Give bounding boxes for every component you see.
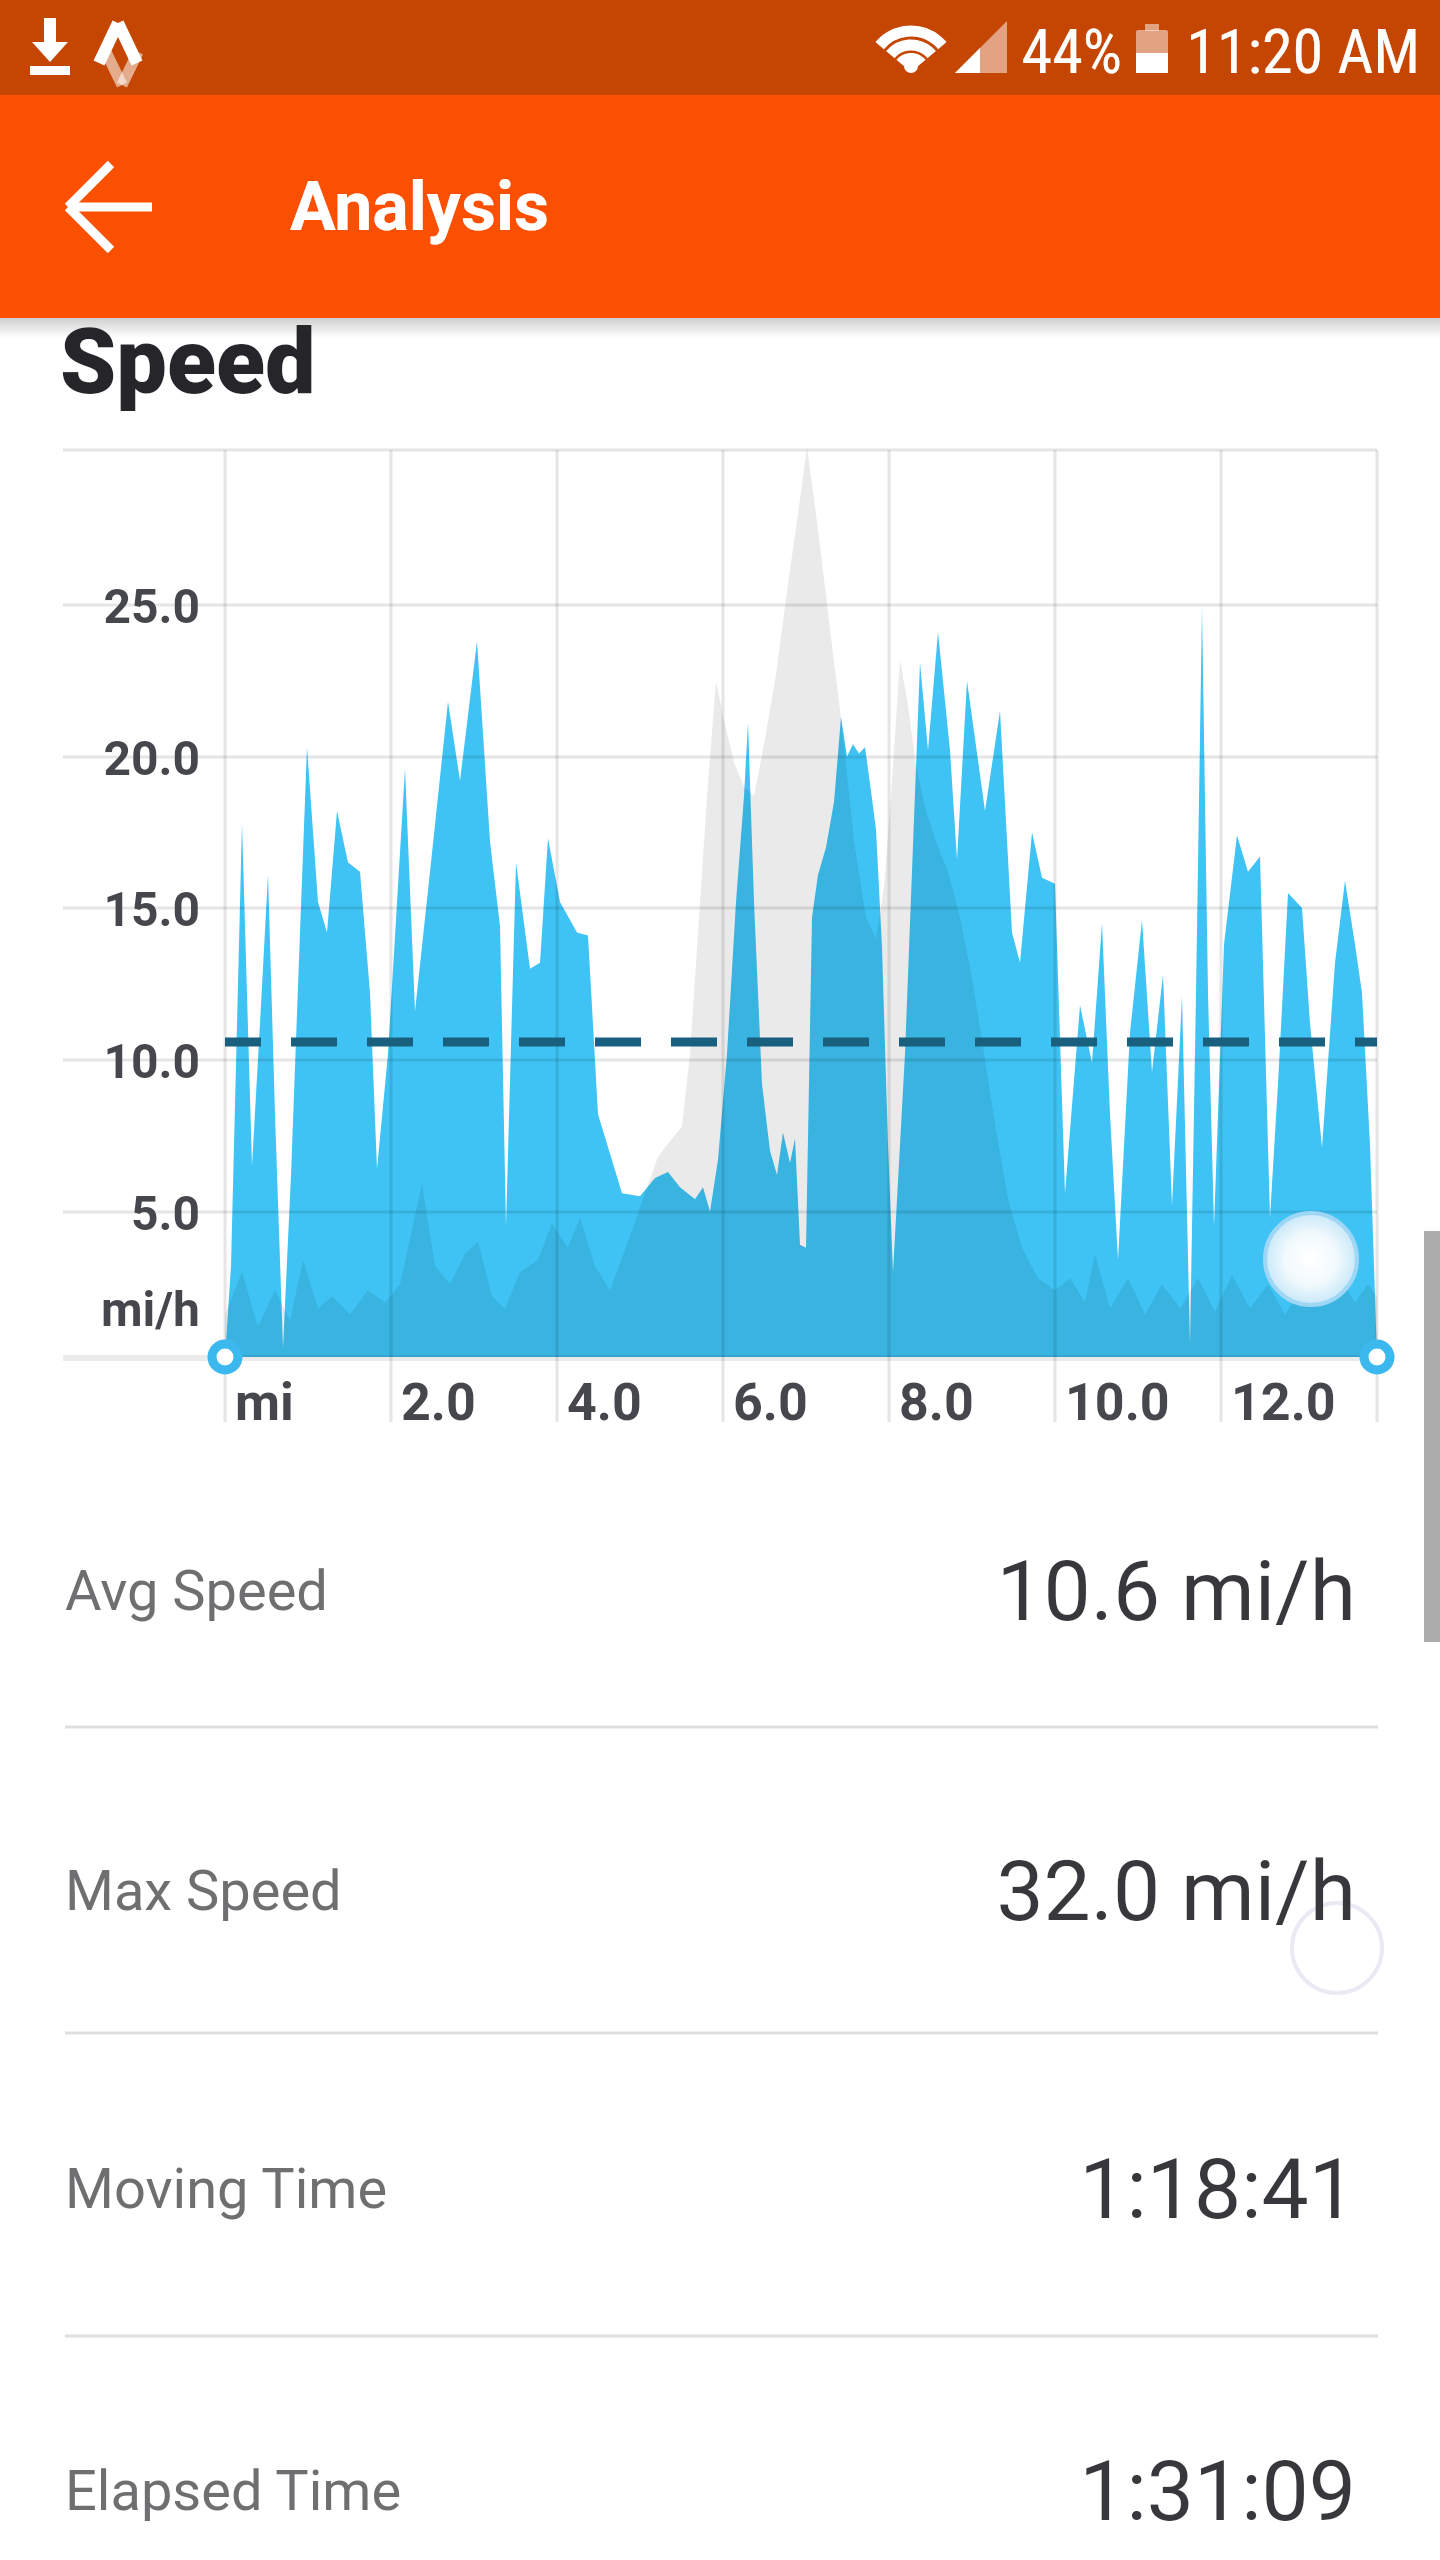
staticText: 10.6 mi/h [556,1542,1356,1640]
staticText: 32.0 mi/h [556,1842,1356,1940]
button[interactable]: Max Speed [0,1740,1440,2040]
staticText: 11:20 AM [1100,15,1420,88]
staticText: mi/h [40,1281,200,1337]
staticText: Max Speed [65,1858,342,1924]
staticText: Analysis [290,167,549,247]
staticText: Elapsed Time [65,2458,402,2524]
staticText: 12.0 [1231,1372,1336,1433]
staticText: 1:18:41 [556,2140,1356,2238]
button[interactable] [50,147,170,267]
staticText: 5.0 [40,1185,200,1241]
staticText: 1:31:09 [556,2442,1356,2540]
staticText: 4.0 [567,1372,642,1433]
staticText: 2.0 [401,1372,476,1433]
staticText: mi [235,1372,294,1433]
staticText: 6.0 [733,1372,808,1433]
staticText: 25.0 [40,578,200,634]
button[interactable]: Moving Time [0,2038,1440,2338]
button[interactable]: Elapsed Time [0,2340,1440,2560]
staticText: Moving Time [65,2156,388,2222]
staticText: Avg Speed [65,1558,328,1624]
staticText: 44% [980,15,1122,88]
staticText: 8.0 [899,1372,974,1433]
staticText: 20.0 [40,730,200,786]
button[interactable]: Avg Speed [0,1440,1440,1740]
staticText: 10.0 [40,1033,200,1089]
staticText: 15.0 [40,881,200,937]
staticText: Speed [60,310,316,415]
staticText: 10.0 [1065,1372,1170,1433]
